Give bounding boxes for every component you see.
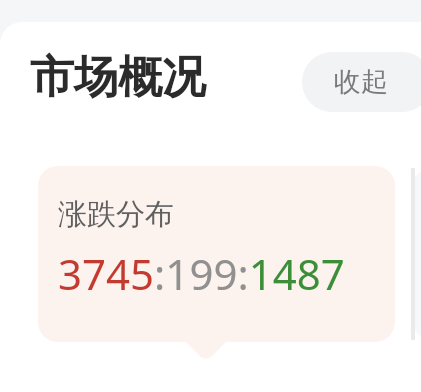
button[interactable]: 收起 — [302, 52, 421, 112]
staticText: 涨跌分布 — [58, 196, 174, 233]
button[interactable] — [412, 168, 421, 340]
staticText: 收起 — [334, 65, 388, 99]
staticText: 3745:199:1487 — [58, 245, 345, 302]
button[interactable]: 涨跌分布 — [38, 166, 395, 342]
staticText: 市场概况 — [30, 50, 206, 105]
